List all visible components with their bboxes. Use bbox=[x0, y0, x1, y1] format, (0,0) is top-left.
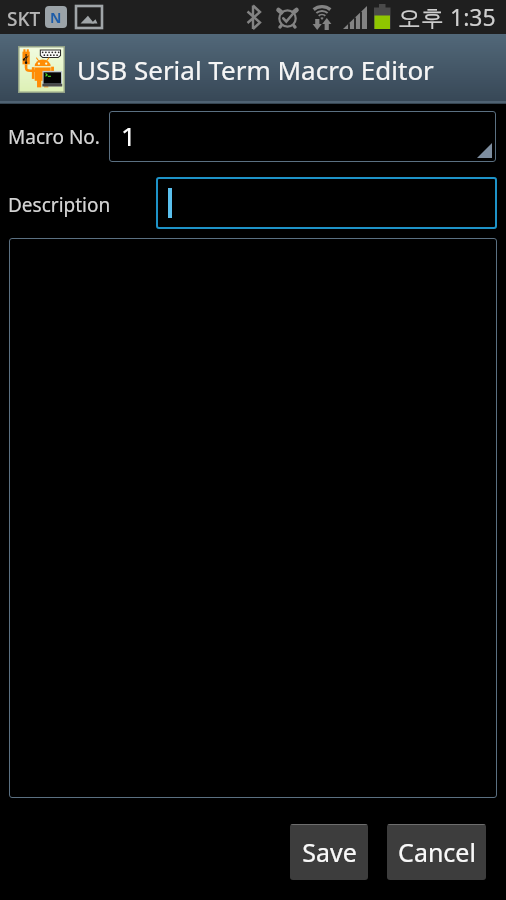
staticText: 1 bbox=[121, 118, 136, 153]
staticText: 오후 1:35 bbox=[398, 1, 496, 32]
button[interactable]: Macro text bbox=[9, 238, 497, 798]
button[interactable]: Description bbox=[156, 177, 497, 229]
staticText: USB Serial Term Macro Editor bbox=[77, 52, 434, 87]
staticText: Save bbox=[302, 835, 357, 869]
staticText: Cancel bbox=[398, 835, 476, 869]
staticText: SKT bbox=[7, 6, 41, 32]
staticText: Macro No. bbox=[8, 124, 100, 150]
staticText: N bbox=[50, 8, 62, 27]
staticText: Description bbox=[8, 192, 111, 218]
button[interactable]: Cancel bbox=[387, 824, 486, 880]
button[interactable]: Save bbox=[290, 824, 368, 880]
button[interactable]: Macro number spinner bbox=[109, 111, 496, 162]
